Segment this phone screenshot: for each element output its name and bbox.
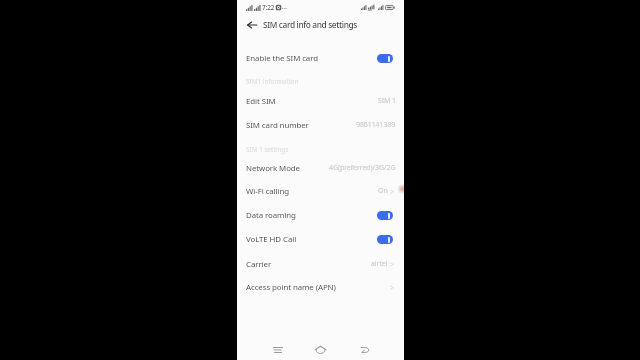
button[interactable]: Back — [354, 340, 374, 360]
button[interactable]: Data roaming — [237, 204, 404, 226]
button[interactable]: Edit SIM — [237, 90, 404, 112]
staticText: On — [378, 186, 388, 196]
staticText: Carrier — [246, 259, 272, 270]
staticText: 7:22 — [262, 3, 275, 12]
staticText: SIM 1 settings — [246, 145, 289, 154]
button[interactable]: SIM card number — [237, 114, 404, 136]
button[interactable]: Carrier — [237, 253, 404, 275]
staticText: SIM1 information — [246, 77, 299, 86]
button[interactable]: VoLTE HD Call — [377, 235, 393, 244]
staticText: Access point name (APN) — [246, 282, 336, 293]
staticText: Network Mode — [246, 163, 300, 174]
staticText: Data roaming — [246, 210, 296, 221]
staticText: Wi-Fi calling — [246, 186, 289, 197]
staticText: Enable the SIM card — [246, 53, 318, 64]
staticText: SIM 1 — [378, 96, 396, 106]
button[interactable]: Back — [244, 17, 259, 32]
staticText: VoLTE HD Call — [246, 234, 297, 245]
button[interactable]: Access point name (APN) — [237, 276, 404, 298]
staticText: SIM card number — [246, 120, 309, 131]
button[interactable]: Enable the SIM card — [377, 54, 393, 63]
button[interactable]: Enable the SIM card — [237, 47, 404, 69]
staticText: airtel — [371, 259, 388, 269]
staticText: Edit SIM — [246, 96, 276, 107]
staticText: 4G(preferred)/3G/2G — [329, 163, 396, 173]
button[interactable]: Wi-Fi calling — [237, 180, 404, 202]
button[interactable]: VoLTE HD Call — [237, 228, 404, 250]
button[interactable]: Home — [310, 339, 330, 360]
staticText: SIM card info and settings — [263, 19, 358, 30]
button[interactable]: Network Mode — [237, 157, 404, 179]
button[interactable]: Data roaming — [377, 211, 393, 220]
staticText: 9861141389 — [356, 120, 396, 130]
button[interactable]: Recent apps — [268, 340, 288, 360]
